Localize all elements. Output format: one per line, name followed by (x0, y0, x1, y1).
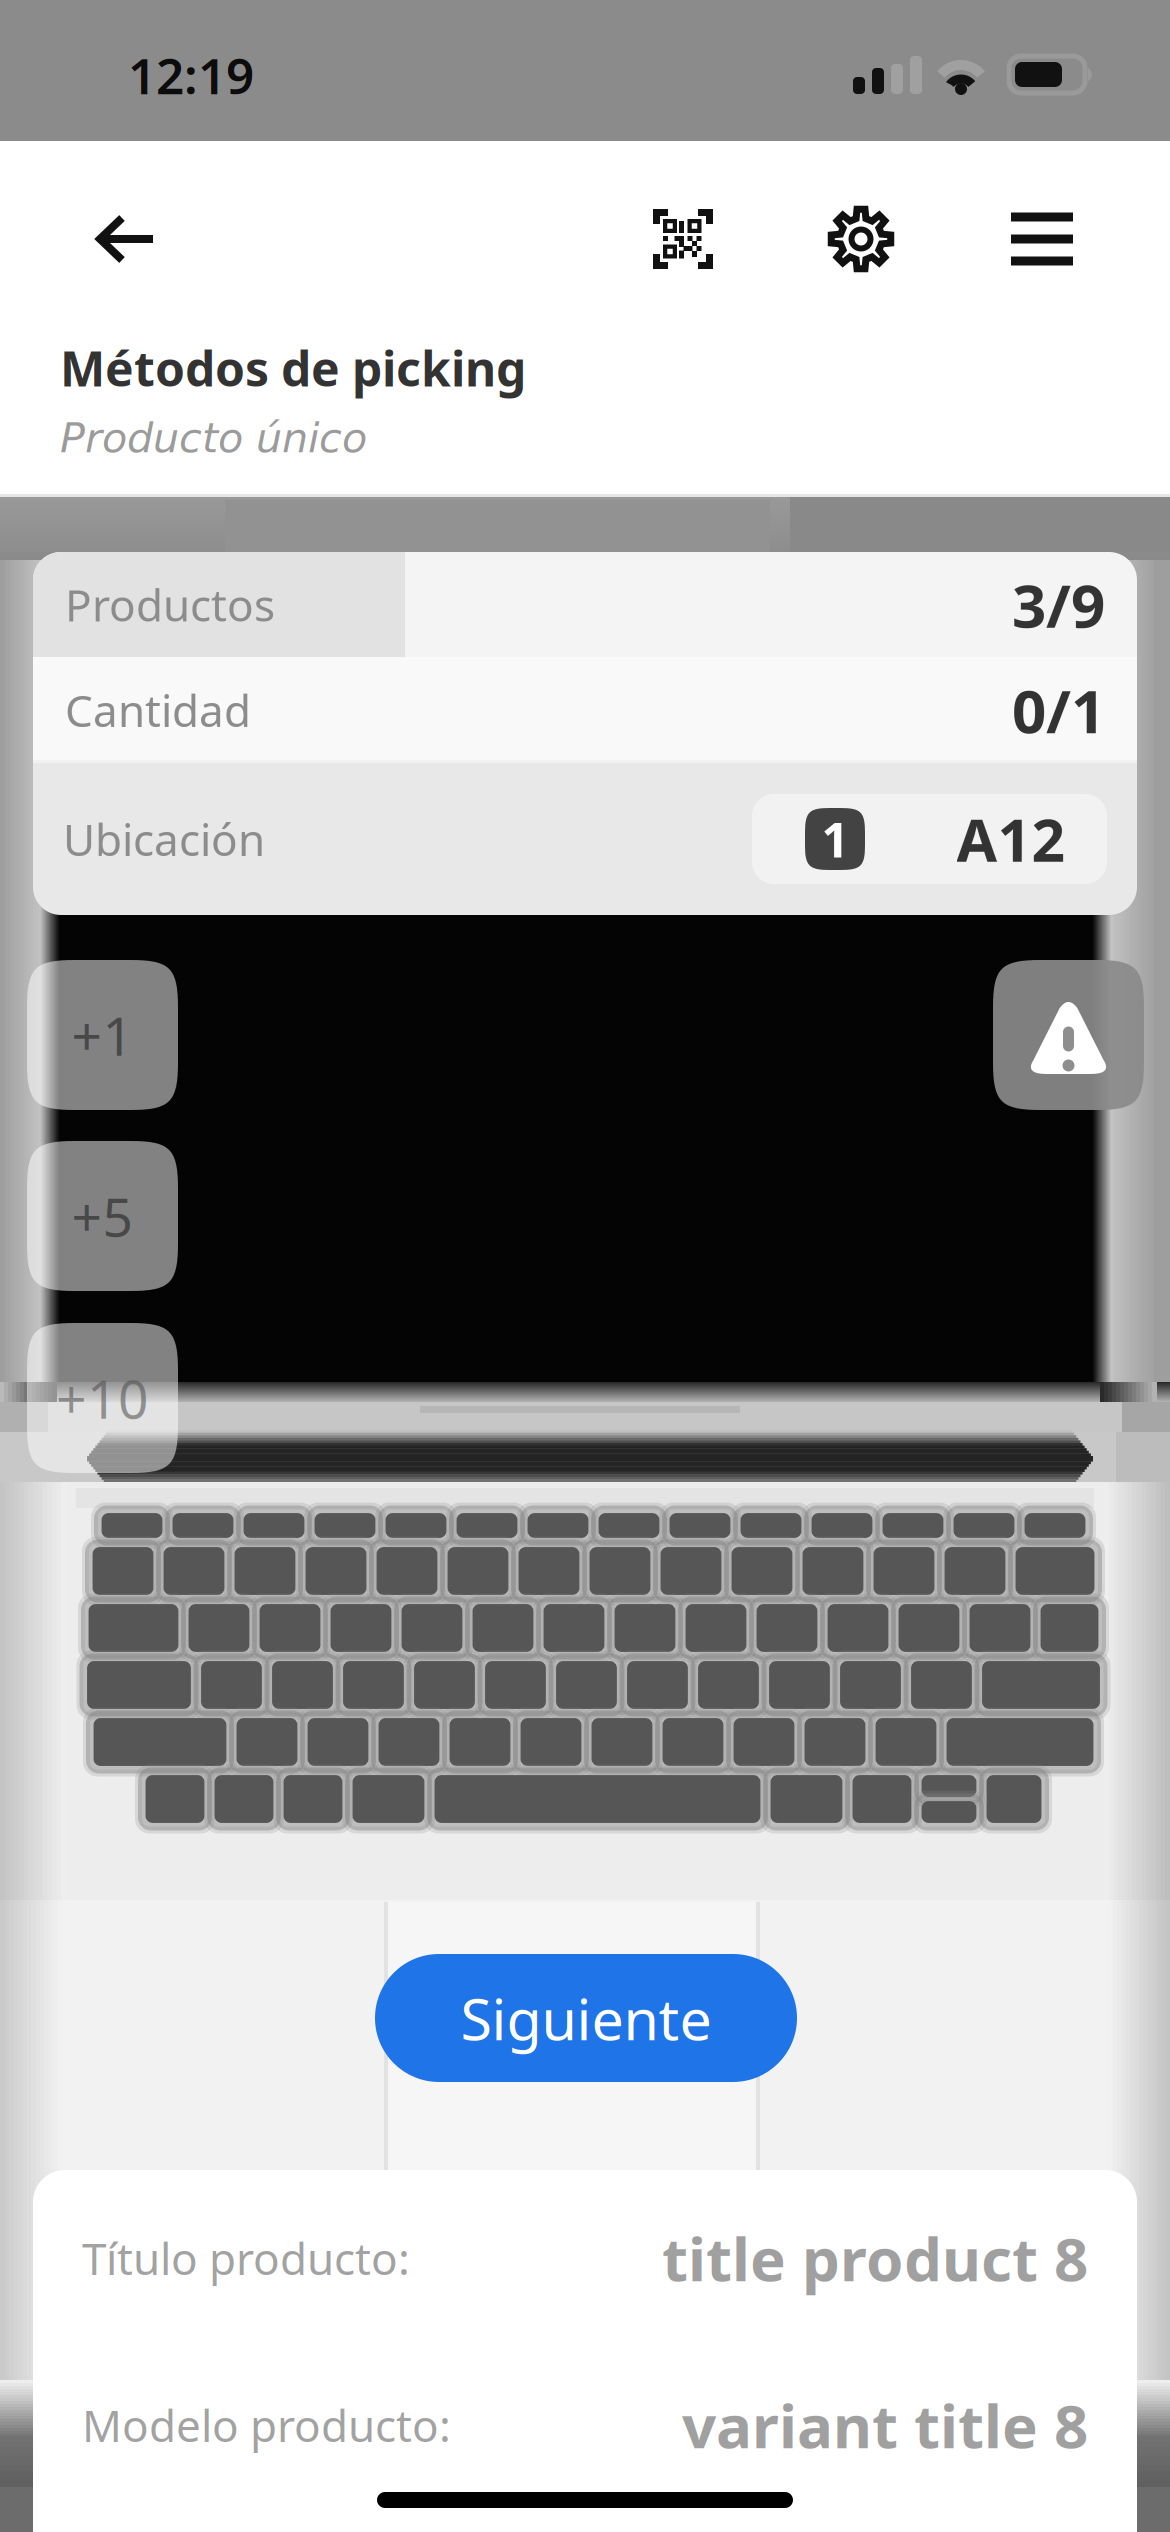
staticText: +10 (56, 1363, 149, 1433)
staticText: 0/1 (1012, 670, 1105, 750)
button[interactable]: Settings (801, 190, 921, 288)
staticText: +1 (71, 1000, 133, 1070)
staticText: Producto único (60, 414, 367, 462)
staticText: A12 (956, 800, 1065, 878)
button[interactable]: +5 (27, 1141, 178, 1291)
staticText: 12:19 (128, 42, 254, 108)
staticText: Ubicación (63, 810, 265, 868)
staticText: title product 8 (662, 2218, 1088, 2298)
staticText: +5 (71, 1181, 133, 1251)
button[interactable]: Siguiente (375, 1954, 797, 2082)
staticText: 3/9 (1012, 565, 1105, 644)
staticText: Cantidad (65, 681, 251, 739)
staticText: variant title 8 (682, 2385, 1088, 2465)
button[interactable]: Menu (982, 190, 1102, 288)
staticText: 1 (821, 807, 848, 871)
staticText: Siguiente (460, 1980, 711, 2056)
staticText: Título producto: (82, 2229, 410, 2287)
staticText: Productos (65, 575, 275, 634)
button[interactable]: +1 (27, 960, 178, 1110)
button[interactable]: Report a problem (993, 960, 1144, 1110)
button[interactable]: +10 (27, 1323, 178, 1473)
staticText: Modelo producto: (82, 2396, 451, 2454)
staticText: Métodos de picking (60, 336, 526, 400)
button[interactable]: Back (64, 190, 188, 288)
button[interactable]: Scan code (623, 190, 743, 288)
